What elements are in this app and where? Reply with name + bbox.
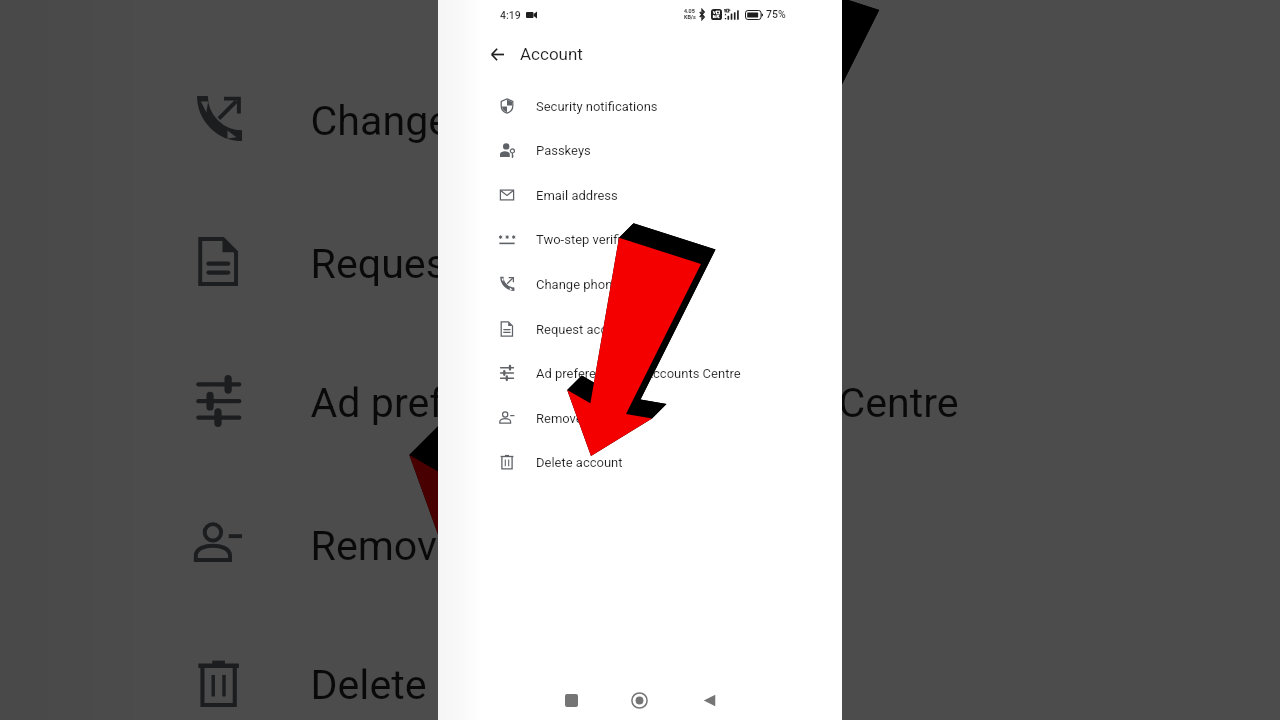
button[interactable]: Remove account xyxy=(438,396,842,440)
button[interactable]: Change phone number xyxy=(0,49,1280,189)
button[interactable]: Email address xyxy=(438,173,842,217)
staticText: Two-step verification xyxy=(310,0,694,2)
button[interactable]: Two-step verification xyxy=(438,217,842,261)
staticText: Change phone number xyxy=(310,97,725,144)
button[interactable]: Ad preferences on Accounts Centre xyxy=(438,351,842,395)
button[interactable]: Change phone number xyxy=(438,262,842,306)
button[interactable]: Security notifications xyxy=(438,84,842,128)
staticText: 75% xyxy=(766,8,786,20)
staticText: Request account info xyxy=(310,240,700,287)
staticText: Ad preferences on Accounts Centre xyxy=(536,366,741,381)
staticText: Two-step verification xyxy=(536,232,657,247)
button[interactable]: Home xyxy=(624,685,654,715)
button[interactable]: Delete account xyxy=(0,613,1280,720)
staticText: Delete account xyxy=(536,455,623,470)
button[interactable]: Two-step verification xyxy=(0,0,1280,46)
staticText: Passkeys xyxy=(536,143,591,158)
staticText: Request account info xyxy=(536,322,659,337)
staticText: Change phone number xyxy=(536,277,667,292)
staticText: Remove account xyxy=(310,522,618,569)
button[interactable]: Ad preferences on Accounts Centre xyxy=(0,331,1280,471)
staticText: 4:19 xyxy=(500,9,521,21)
staticText: Ad preferences on Accounts Centre xyxy=(310,379,960,426)
staticText: 4.05 xyxy=(684,8,695,14)
button[interactable]: Recent apps xyxy=(556,685,586,715)
button[interactable]: Delete account xyxy=(438,440,842,484)
button[interactable]: Request account info xyxy=(0,192,1280,331)
button[interactable]: Back xyxy=(485,42,509,66)
staticText: KB/s xyxy=(684,14,696,20)
staticText: Account xyxy=(520,44,583,64)
staticText: Security notifications xyxy=(536,99,658,114)
button[interactable]: Passkeys xyxy=(438,128,842,172)
button[interactable]: Request account info xyxy=(438,307,842,351)
button[interactable]: Back xyxy=(694,685,724,715)
staticText: Remove account xyxy=(536,411,633,426)
button[interactable]: Remove account xyxy=(0,474,1280,613)
staticText: Email address xyxy=(536,188,618,203)
staticText: Delete account xyxy=(310,661,586,708)
